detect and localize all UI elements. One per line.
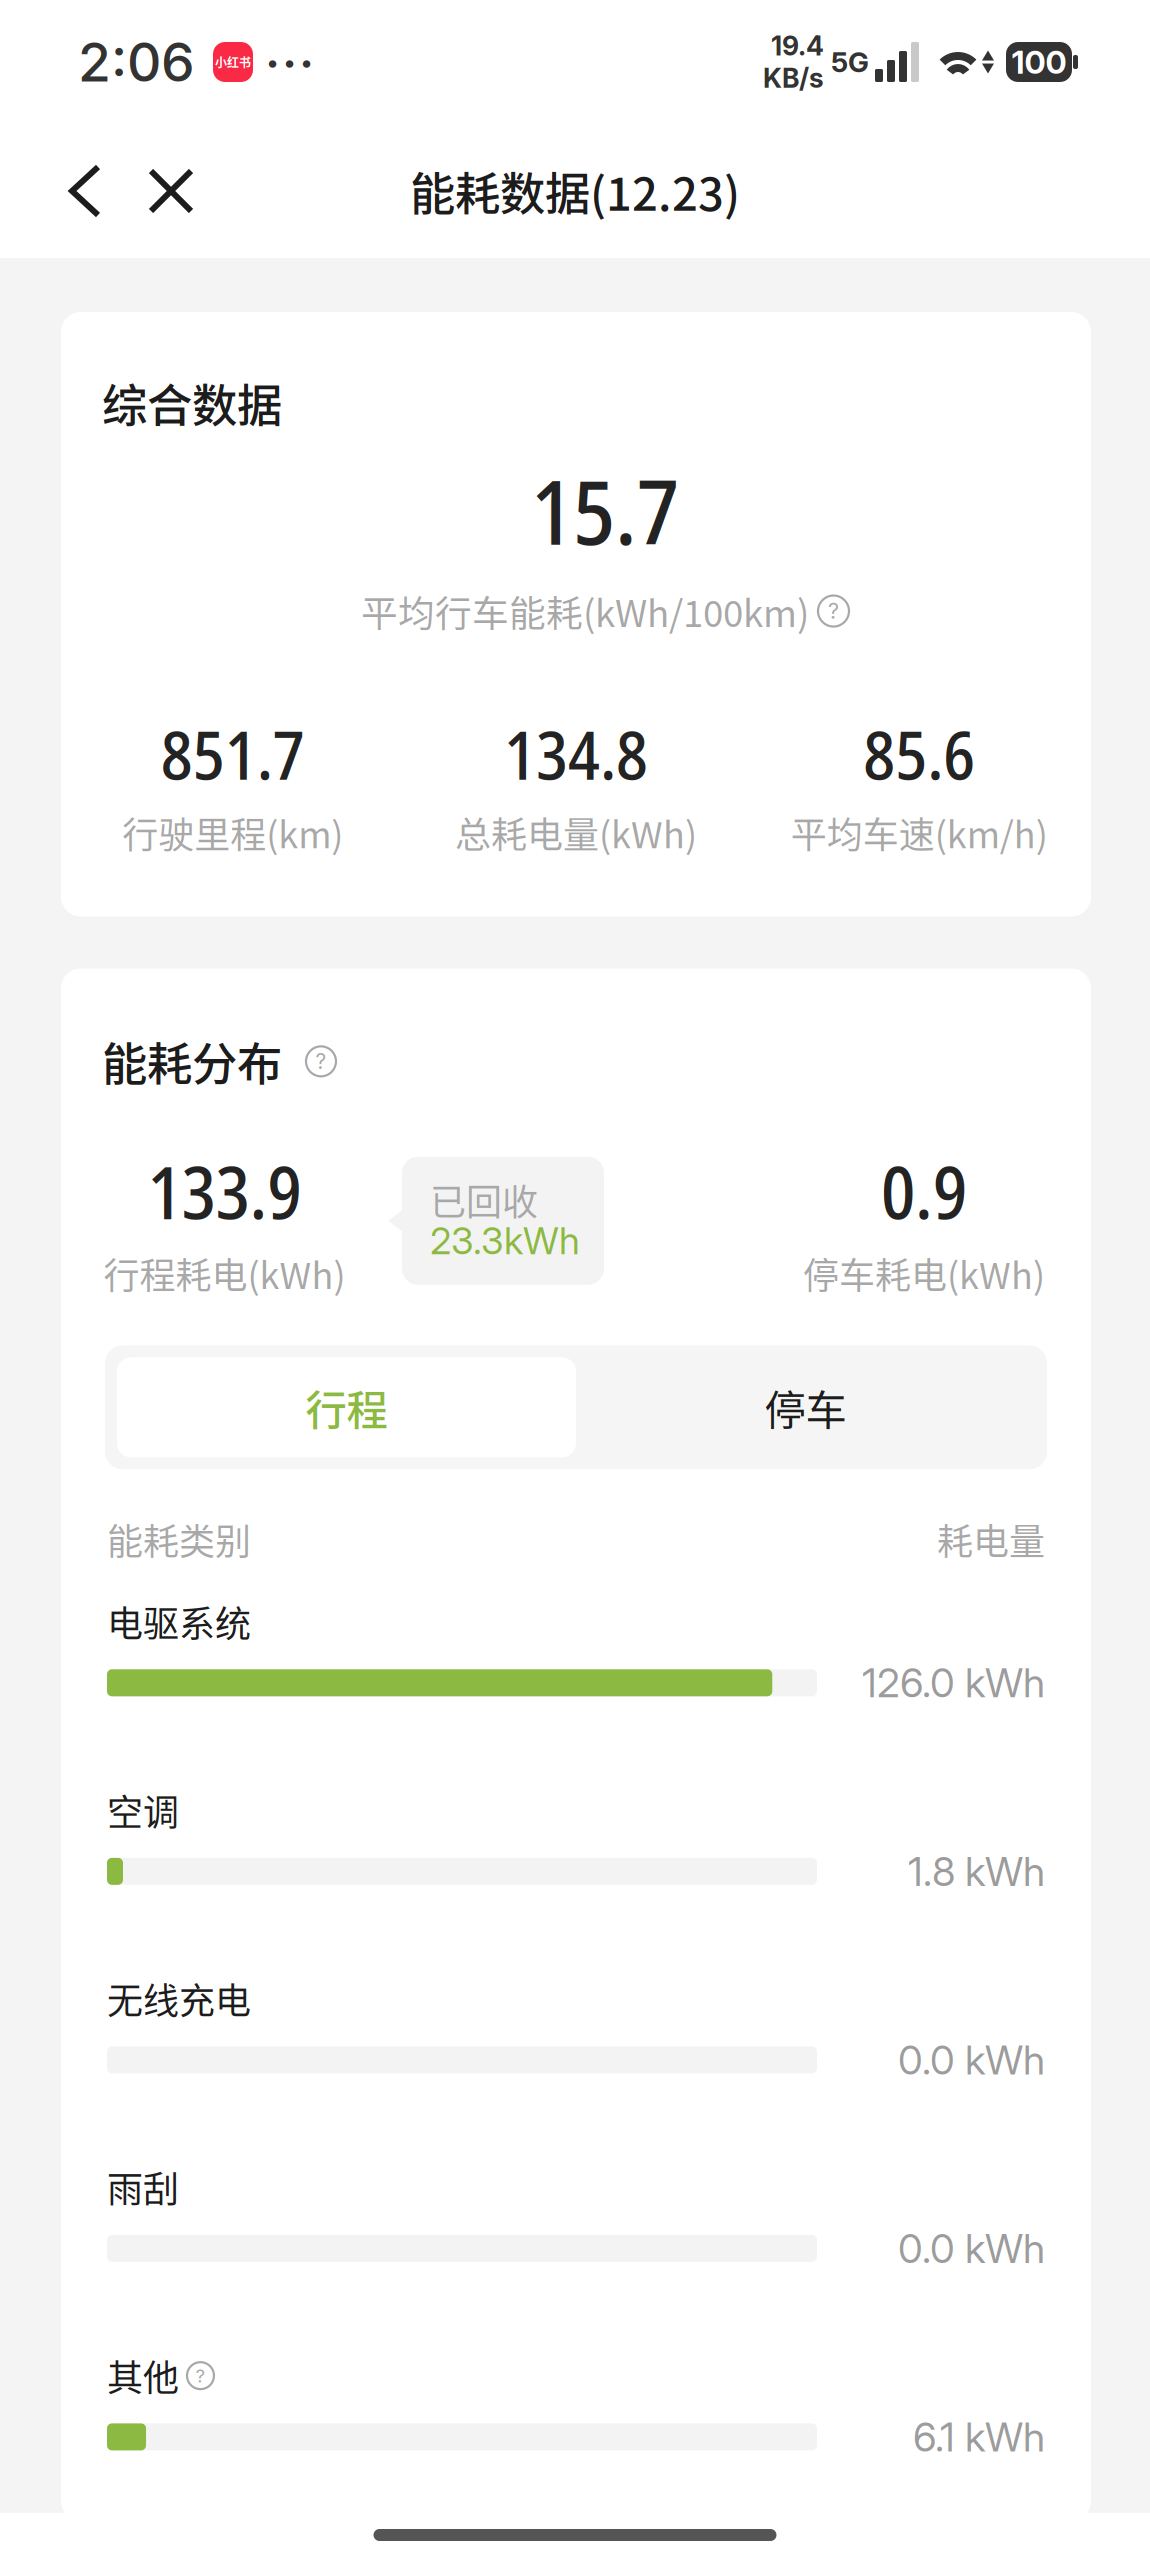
staticText: • • • [267, 47, 312, 76]
staticText: 能耗类别 [107, 1513, 251, 1565]
staticText: 行程耗电(kWh) [103, 1247, 345, 1299]
staticText: 平均行车能耗(kWh/100km) [361, 584, 809, 638]
staticText: 电驱系统 [107, 1595, 251, 1648]
button[interactable]: 返回 [42, 147, 128, 235]
staticText: 1.8 kWh [908, 1847, 1045, 1895]
staticText: 综合数据 [102, 370, 282, 436]
staticText: 能耗分布 [102, 1028, 282, 1094]
staticText: 6.1 kWh [913, 2413, 1045, 2461]
staticText: 行驶里程(km) [122, 806, 343, 858]
staticText: 126.0 kWh [862, 1659, 1045, 1707]
staticText: 0.0 kWh [898, 2036, 1045, 2084]
staticText: 总耗电量(kWh) [455, 806, 697, 858]
staticText: ? [828, 598, 839, 624]
staticText: 停车 [764, 1377, 846, 1437]
staticText: 134.8 [504, 709, 648, 799]
staticText: 0.9 [881, 1142, 967, 1240]
staticText: 无线充电 [107, 1972, 251, 2025]
staticText: 停车耗电(kWh) [803, 1247, 1045, 1299]
staticText: 耗电量 [937, 1513, 1045, 1565]
button[interactable]: 行程 [117, 1357, 576, 1457]
staticText: 133.9 [147, 1142, 301, 1240]
staticText: 85.6 [863, 709, 975, 799]
button[interactable]: 关闭 [128, 147, 214, 235]
staticText: 平均车速(km/h) [791, 806, 1048, 858]
staticText: 雨刮 [107, 2161, 179, 2213]
staticText: 851.7 [161, 709, 305, 799]
staticText: 23.3kWh [430, 1218, 580, 1263]
staticText: 2:06 [78, 30, 195, 94]
staticText: ? [315, 1049, 326, 1074]
staticText: 已回收 [430, 1174, 538, 1226]
staticText: 空调 [107, 1784, 179, 1836]
staticText: 能耗数据(12.23) [410, 158, 740, 224]
staticText: 5G [831, 45, 869, 79]
staticText: KB/s [763, 62, 824, 94]
button[interactable]: 停车 [576, 1357, 1035, 1457]
staticText: 小红书 [215, 53, 251, 71]
staticText: 其他 [107, 2350, 179, 2402]
staticText: 19.4 [771, 30, 824, 62]
staticText: ? [195, 2364, 205, 2387]
staticText: 行程 [305, 1377, 387, 1437]
staticText: 0.0 kWh [898, 2224, 1045, 2273]
staticText: 15.7 [531, 451, 679, 570]
staticText: 100 [1011, 43, 1066, 81]
